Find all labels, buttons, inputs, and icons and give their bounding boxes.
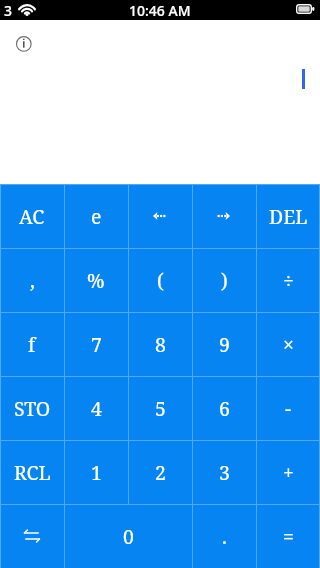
- staticText: 8: [155, 331, 166, 358]
- button[interactable]: STO: [0, 376, 64, 440]
- button[interactable]: (: [128, 248, 192, 312]
- staticText: 2: [155, 459, 166, 486]
- staticText: ): [221, 267, 228, 294]
- staticText: STO: [14, 395, 51, 422]
- staticText: 1: [91, 459, 102, 486]
- button[interactable]: Move cursor right: [192, 184, 256, 248]
- button[interactable]: 9: [192, 312, 256, 376]
- staticText: 10:46 AM: [129, 1, 191, 20]
- button[interactable]: DEL: [256, 184, 320, 248]
- button[interactable]: 6: [192, 376, 256, 440]
- button[interactable]: 3: [192, 440, 256, 504]
- button[interactable]: 8: [128, 312, 192, 376]
- staticText: (: [157, 267, 164, 294]
- button[interactable]: RCL: [0, 440, 64, 504]
- staticText: 7: [91, 331, 102, 358]
- staticText: ,: [30, 267, 35, 294]
- button[interactable]: 0: [64, 504, 192, 568]
- button[interactable]: 2: [128, 440, 192, 504]
- staticText: ×: [283, 331, 294, 358]
- staticText: ÷: [283, 267, 294, 294]
- button[interactable]: .: [192, 504, 256, 568]
- button[interactable]: AC: [0, 184, 64, 248]
- button[interactable]: 5: [128, 376, 192, 440]
- button[interactable]: Move cursor left: [128, 184, 192, 248]
- staticText: 5: [155, 395, 166, 422]
- button[interactable]: =: [256, 504, 320, 568]
- button[interactable]: ×: [256, 312, 320, 376]
- staticText: e: [91, 203, 102, 230]
- staticText: 9: [219, 331, 230, 358]
- button[interactable]: -: [256, 376, 320, 440]
- button[interactable]: 1: [64, 440, 128, 504]
- staticText: AC: [19, 203, 45, 230]
- staticText: %: [87, 267, 105, 294]
- button[interactable]: 4: [64, 376, 128, 440]
- staticText: RCL: [14, 459, 51, 486]
- staticText: 0: [123, 523, 134, 550]
- button[interactable]: ): [192, 248, 256, 312]
- staticText: f: [28, 331, 36, 358]
- button[interactable]: +: [256, 440, 320, 504]
- staticText: 6: [219, 395, 230, 422]
- button[interactable]: Swap: [0, 504, 64, 568]
- button[interactable]: Info: [14, 34, 34, 54]
- button[interactable]: ,: [0, 248, 64, 312]
- staticText: 3: [219, 459, 230, 486]
- button[interactable]: 7: [64, 312, 128, 376]
- staticText: .: [222, 523, 227, 550]
- button[interactable]: %: [64, 248, 128, 312]
- staticText: =: [283, 523, 294, 550]
- staticText: DEL: [269, 203, 308, 230]
- staticText: +: [283, 459, 294, 486]
- staticText: -: [285, 395, 292, 422]
- staticText: 4: [91, 395, 102, 422]
- staticText: 3: [4, 1, 13, 20]
- button[interactable]: ÷: [256, 248, 320, 312]
- button[interactable]: f: [0, 312, 64, 376]
- button[interactable]: e: [64, 184, 128, 248]
